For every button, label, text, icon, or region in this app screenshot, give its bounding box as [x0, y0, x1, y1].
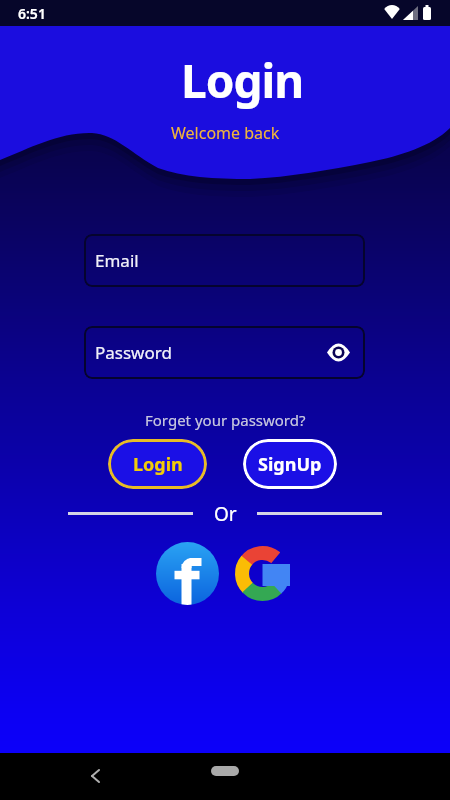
button[interactable] [235, 546, 290, 601]
button[interactable] [156, 542, 219, 605]
button[interactable]: Email [84, 234, 365, 287]
staticText: Email [95, 249, 139, 272]
staticText: 6:51 [18, 4, 46, 23]
button[interactable]: Password [84, 326, 365, 379]
button[interactable]: SignUp [243, 439, 337, 489]
button[interactable]: Login [108, 439, 207, 489]
button[interactable] [211, 766, 239, 776]
staticText: Or [214, 501, 237, 527]
button[interactable]: Forget your password? [145, 410, 306, 430]
staticText: Login [133, 452, 183, 477]
staticText: Password [95, 341, 172, 364]
staticText: Welcome back [171, 122, 280, 144]
staticText: SignUp [258, 452, 322, 477]
staticText: Login [181, 49, 304, 112]
button[interactable] [90, 769, 102, 783]
